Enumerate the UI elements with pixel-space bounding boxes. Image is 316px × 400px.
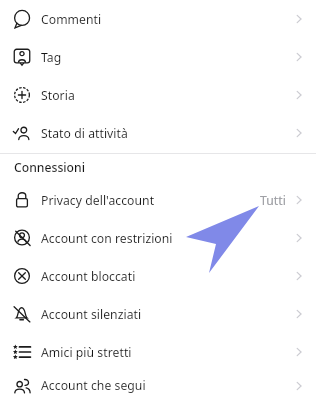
button[interactable]: Account che segui (0, 371, 316, 400)
button[interactable]: Commenti (0, 0, 316, 38)
staticText: Storia (41, 87, 293, 104)
button[interactable]: Tag (0, 38, 316, 76)
staticText: Amici più stretti (41, 344, 293, 361)
staticText: Account che segui (41, 377, 293, 394)
staticText: Tag (41, 49, 293, 66)
staticText: Account bloccati (41, 268, 293, 285)
button[interactable]: Amici più stretti (0, 333, 316, 371)
button[interactable]: Stato di attività (0, 114, 316, 152)
staticText: Commenti (41, 11, 293, 28)
staticText: Connessioni (14, 159, 85, 176)
staticText: Account con restrizioni (41, 230, 293, 247)
button[interactable]: Account con restrizioni (0, 219, 316, 257)
staticText: Stato di attività (41, 125, 293, 142)
staticText: Privacy dell'account (41, 192, 260, 209)
button[interactable]: Privacy dell'account (0, 181, 316, 219)
button[interactable]: Storia (0, 76, 316, 114)
button[interactable]: Account bloccati (0, 257, 316, 295)
staticText: Account silenziati (41, 306, 293, 323)
staticText: Tutti (260, 192, 286, 209)
button[interactable]: Account silenziati (0, 295, 316, 333)
